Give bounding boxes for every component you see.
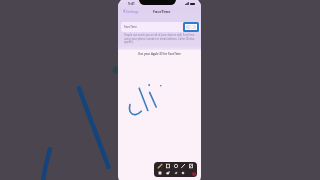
button[interactable]: Pencil <box>173 163 179 169</box>
button[interactable]: Select <box>173 170 179 176</box>
button[interactable]: Lasso <box>188 163 194 169</box>
button[interactable]: Undo <box>180 170 186 176</box>
button[interactable]: Settings <box>122 9 139 13</box>
staticText: FaceTime <box>124 25 137 29</box>
button[interactable]: Pen <box>157 163 163 169</box>
button[interactable]: FaceTime <box>121 22 200 32</box>
staticText: FaceTime <box>153 9 171 14</box>
button[interactable]: Add <box>188 170 194 176</box>
button[interactable]: FaceTime on/off <box>186 25 196 29</box>
staticText: Settings <box>126 9 139 13</box>
button[interactable]: Marker <box>165 163 171 169</box>
button[interactable]: Ruler <box>157 170 163 176</box>
button[interactable]: Colour <box>192 172 196 176</box>
staticText: 9:41 <box>128 1 135 6</box>
button[interactable]: Shapes <box>165 170 171 176</box>
staticText: Use your Apple ID for FaceTime <box>118 52 201 56</box>
button[interactable]: Eraser <box>180 163 186 169</box>
staticText: People can reach you on all of your devi… <box>124 33 199 43</box>
